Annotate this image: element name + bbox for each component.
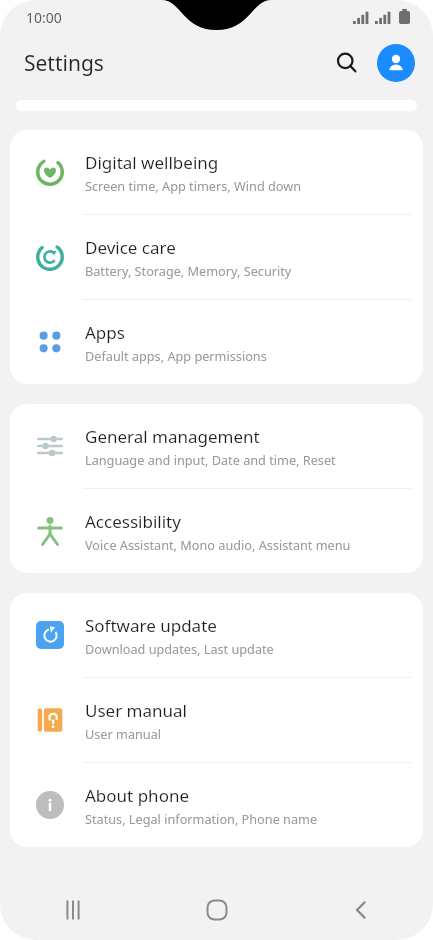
staticText: Language and input, Date and time, Reset bbox=[85, 451, 336, 468]
staticText: Digital wellbeing bbox=[85, 151, 219, 174]
button[interactable]: About phone bbox=[10, 763, 423, 847]
staticText: Download updates, Last update bbox=[85, 640, 274, 657]
staticText: User manual bbox=[85, 725, 162, 742]
button[interactable]: Apps bbox=[10, 300, 423, 384]
button[interactable]: Accessibility bbox=[10, 489, 423, 573]
button[interactable]: Digital wellbeing bbox=[10, 130, 423, 214]
staticText: Software update bbox=[85, 614, 217, 637]
button[interactable]: User manual bbox=[10, 678, 423, 762]
staticText: Accessibility bbox=[85, 510, 181, 533]
staticText: Status, Legal information, Phone name bbox=[85, 810, 318, 827]
staticText: Settings bbox=[24, 49, 104, 78]
staticText: Battery, Storage, Memory, Security bbox=[85, 262, 292, 279]
button[interactable]: Recent apps bbox=[0, 880, 145, 940]
button[interactable]: Back bbox=[289, 880, 433, 940]
staticText: General management bbox=[85, 425, 260, 448]
staticText: Voice Assistant, Mono audio, Assistant m… bbox=[85, 536, 351, 553]
staticText: Device care bbox=[85, 236, 176, 259]
button[interactable]: Device care bbox=[10, 215, 423, 299]
staticText: Default apps, App permissions bbox=[85, 347, 267, 364]
staticText: Apps bbox=[85, 321, 125, 344]
staticText: About phone bbox=[85, 784, 190, 807]
button[interactable]: Account bbox=[377, 44, 415, 82]
button[interactable]: General management bbox=[10, 404, 423, 488]
staticText: Screen time, App timers, Wind down bbox=[85, 177, 302, 194]
staticText: 10:00 bbox=[26, 8, 62, 27]
button[interactable]: Home bbox=[145, 880, 289, 940]
button[interactable]: Software update bbox=[10, 593, 423, 677]
button[interactable]: Search bbox=[325, 41, 369, 85]
staticText: User manual bbox=[85, 699, 187, 722]
